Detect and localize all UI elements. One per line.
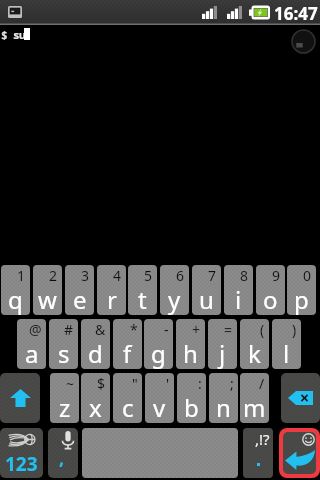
staticText: & [95,320,106,339]
button[interactable]: 9 [256,265,285,315]
staticText: y [168,283,181,315]
button[interactable]: # [49,319,78,369]
button[interactable]: ,!? [243,428,273,478]
staticText: 8 [240,266,249,285]
staticText: h [183,337,198,369]
staticText: n [216,391,231,423]
button[interactable]: / [240,373,269,423]
button[interactable]: Enter [283,432,316,474]
staticText: m [243,391,266,423]
staticText: ' [166,374,170,393]
staticText: e [73,283,87,315]
staticText: 123 [5,451,38,477]
staticText: - [164,320,169,339]
staticText: ,!? [255,429,270,449]
staticText: 7 [208,266,217,285]
staticText: , [59,446,65,471]
staticText: / [259,374,265,393]
staticText: 6 [176,266,185,285]
staticText: d [88,337,103,369]
staticText: q [8,283,23,315]
button[interactable]: ( [240,319,269,369]
staticText: p [294,283,309,315]
staticText: ) [292,320,297,339]
staticText: k [248,337,261,369]
staticText: " [132,374,138,393]
staticText: $ [1,27,8,42]
button[interactable]: ' [145,373,174,423]
button[interactable]: + [176,319,205,369]
staticText: o [263,283,278,315]
staticText: # [64,320,74,339]
staticText: s [58,337,70,369]
staticText: = [224,320,233,339]
staticText: z [59,391,71,423]
staticText: 3 [81,266,90,285]
staticText: v [153,391,166,423]
staticText: 4 [113,266,122,285]
button[interactable]: = [208,319,237,369]
staticText: t [138,283,147,315]
staticText: r [107,283,117,315]
staticText: 2 [49,266,58,285]
button[interactable]: * [113,319,142,369]
staticText: : [198,374,202,393]
staticText: * [130,320,138,339]
staticText: 5 [144,266,153,285]
staticText: u [199,283,214,315]
staticText: ( [260,320,265,339]
staticText: 9 [272,266,281,285]
staticText: b [184,391,199,423]
button[interactable]: 1 [1,265,30,315]
staticText: c [122,391,134,423]
button[interactable]: 123 [0,428,43,478]
staticText: s [13,27,20,42]
button[interactable]: @ [17,319,46,369]
staticText: @ [29,320,42,339]
staticText: 16:47 [274,2,318,25]
button[interactable]: ; [209,373,238,423]
staticText: 0 [303,266,312,285]
button[interactable]: Voice input [48,428,78,478]
button[interactable]: 6 [160,265,189,315]
button[interactable]: 7 [192,265,221,315]
staticText: 1 [17,266,26,285]
staticText: g [151,337,166,369]
staticText: a [25,337,39,369]
button[interactable]: ~ [50,373,79,423]
staticText: $ [97,374,106,393]
staticText: ; [230,374,234,393]
button[interactable]: - [144,319,173,369]
button[interactable]: 4 [97,265,126,315]
staticText: x [89,391,102,423]
staticText: l [283,337,290,369]
button[interactable]: $ [81,373,110,423]
button[interactable]: 0 [287,265,316,315]
staticText: w [38,283,57,315]
button[interactable]: & [81,319,110,369]
button[interactable]: Space [82,428,238,478]
staticText: u [19,27,26,42]
staticText: j [219,337,226,369]
button[interactable]: 8 [224,265,253,315]
button[interactable]: ) [272,319,301,369]
staticText: ~ [66,374,75,393]
button[interactable]: Shift [0,373,40,423]
button[interactable]: 3 [65,265,94,315]
button[interactable]: " [113,373,142,423]
button[interactable]: 2 [33,265,62,315]
staticText: f [123,337,132,369]
staticText: i [235,283,242,315]
staticText: + [192,320,201,339]
button[interactable]: Backspace [281,373,320,423]
button[interactable]: 5 [128,265,157,315]
button[interactable]: : [177,373,206,423]
